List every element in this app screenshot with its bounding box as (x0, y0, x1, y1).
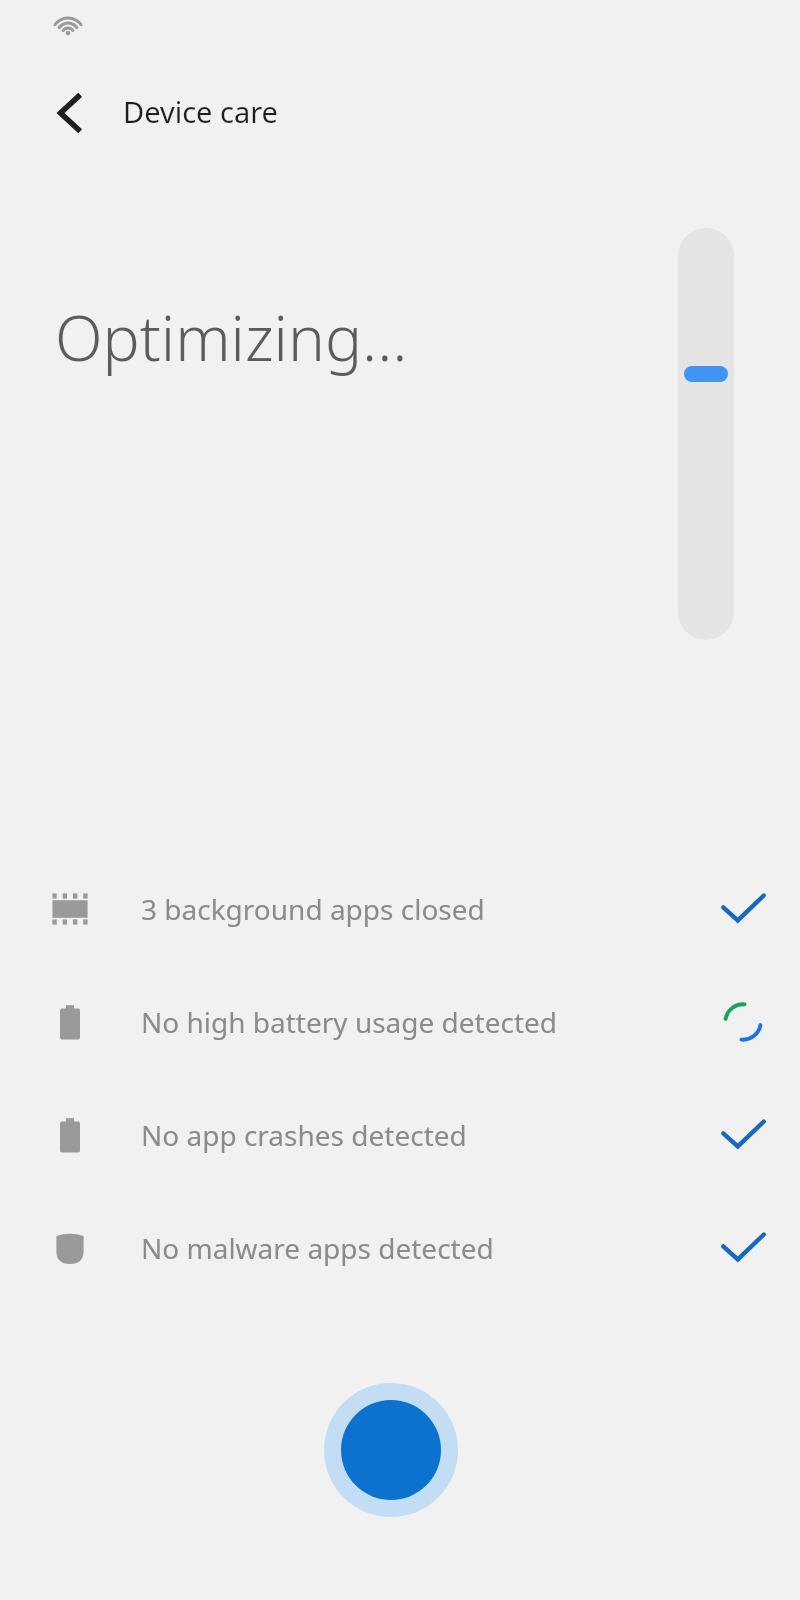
button[interactable]: No app crashes detected (0, 1078, 800, 1191)
button[interactable]: No high battery usage detected (0, 965, 800, 1078)
button[interactable]: Back (36, 79, 104, 147)
staticText: No app crashes detected (141, 1116, 708, 1154)
button[interactable]: No malware apps detected (0, 1191, 800, 1304)
staticText: No malware apps detected (141, 1229, 708, 1267)
staticText: Device care (123, 92, 278, 131)
staticText: Optimizing... (55, 295, 408, 379)
staticText: No high battery usage detected (141, 1003, 708, 1041)
button[interactable]: Stop optimizing (324, 1383, 458, 1517)
staticText: 3 background apps closed (141, 890, 708, 928)
button[interactable]: 3 background apps closed (0, 852, 800, 965)
